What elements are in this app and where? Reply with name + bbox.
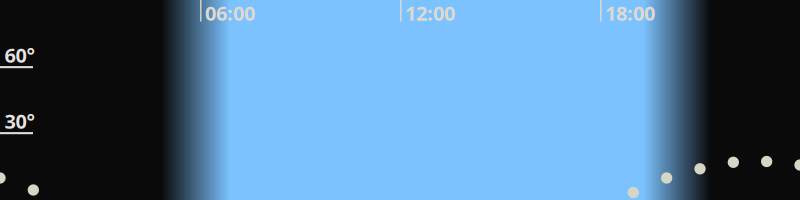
staticText: 12:00 xyxy=(405,0,455,26)
staticText: 60° xyxy=(4,42,34,68)
staticText: 06:00 xyxy=(205,0,255,26)
staticText: 18:00 xyxy=(605,0,655,26)
staticText: 30° xyxy=(4,108,34,134)
